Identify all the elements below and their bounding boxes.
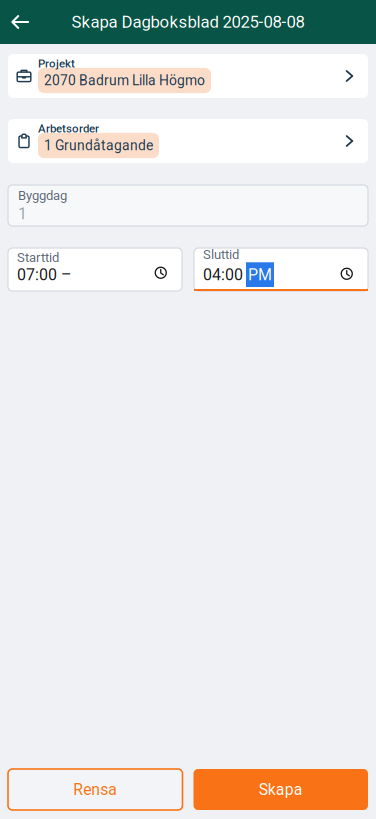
staticText: Rensa xyxy=(73,780,117,799)
staticText: Starttid xyxy=(17,250,59,265)
button[interactable]: Sluttid xyxy=(194,248,368,291)
staticText: 1 Grundåtagande xyxy=(44,137,153,154)
staticText: 2070 Badrum Lilla Högmo xyxy=(44,72,205,89)
staticText: Byggdag xyxy=(18,188,67,203)
button[interactable]: Skapa xyxy=(193,769,368,810)
button[interactable]: Starttid xyxy=(8,248,182,291)
staticText: 04:00 xyxy=(203,265,243,284)
staticText: Projekt xyxy=(38,57,75,70)
button[interactable]: 1 Grundåtagande xyxy=(8,119,368,163)
staticText: 07:00 – xyxy=(17,265,72,284)
button[interactable]: Rensa xyxy=(8,769,182,810)
staticText: Arbetsorder xyxy=(38,122,99,135)
staticText: Skapa Dagboksblad 2025-08-08 xyxy=(71,12,304,32)
staticText: PM xyxy=(248,265,272,284)
staticText: Sluttid xyxy=(203,247,239,262)
staticText: 1 xyxy=(18,204,27,223)
staticText: Skapa xyxy=(259,780,303,799)
button[interactable]: Back xyxy=(0,0,40,44)
button[interactable]: 2070 Badrum Lilla Högmo xyxy=(8,54,368,98)
